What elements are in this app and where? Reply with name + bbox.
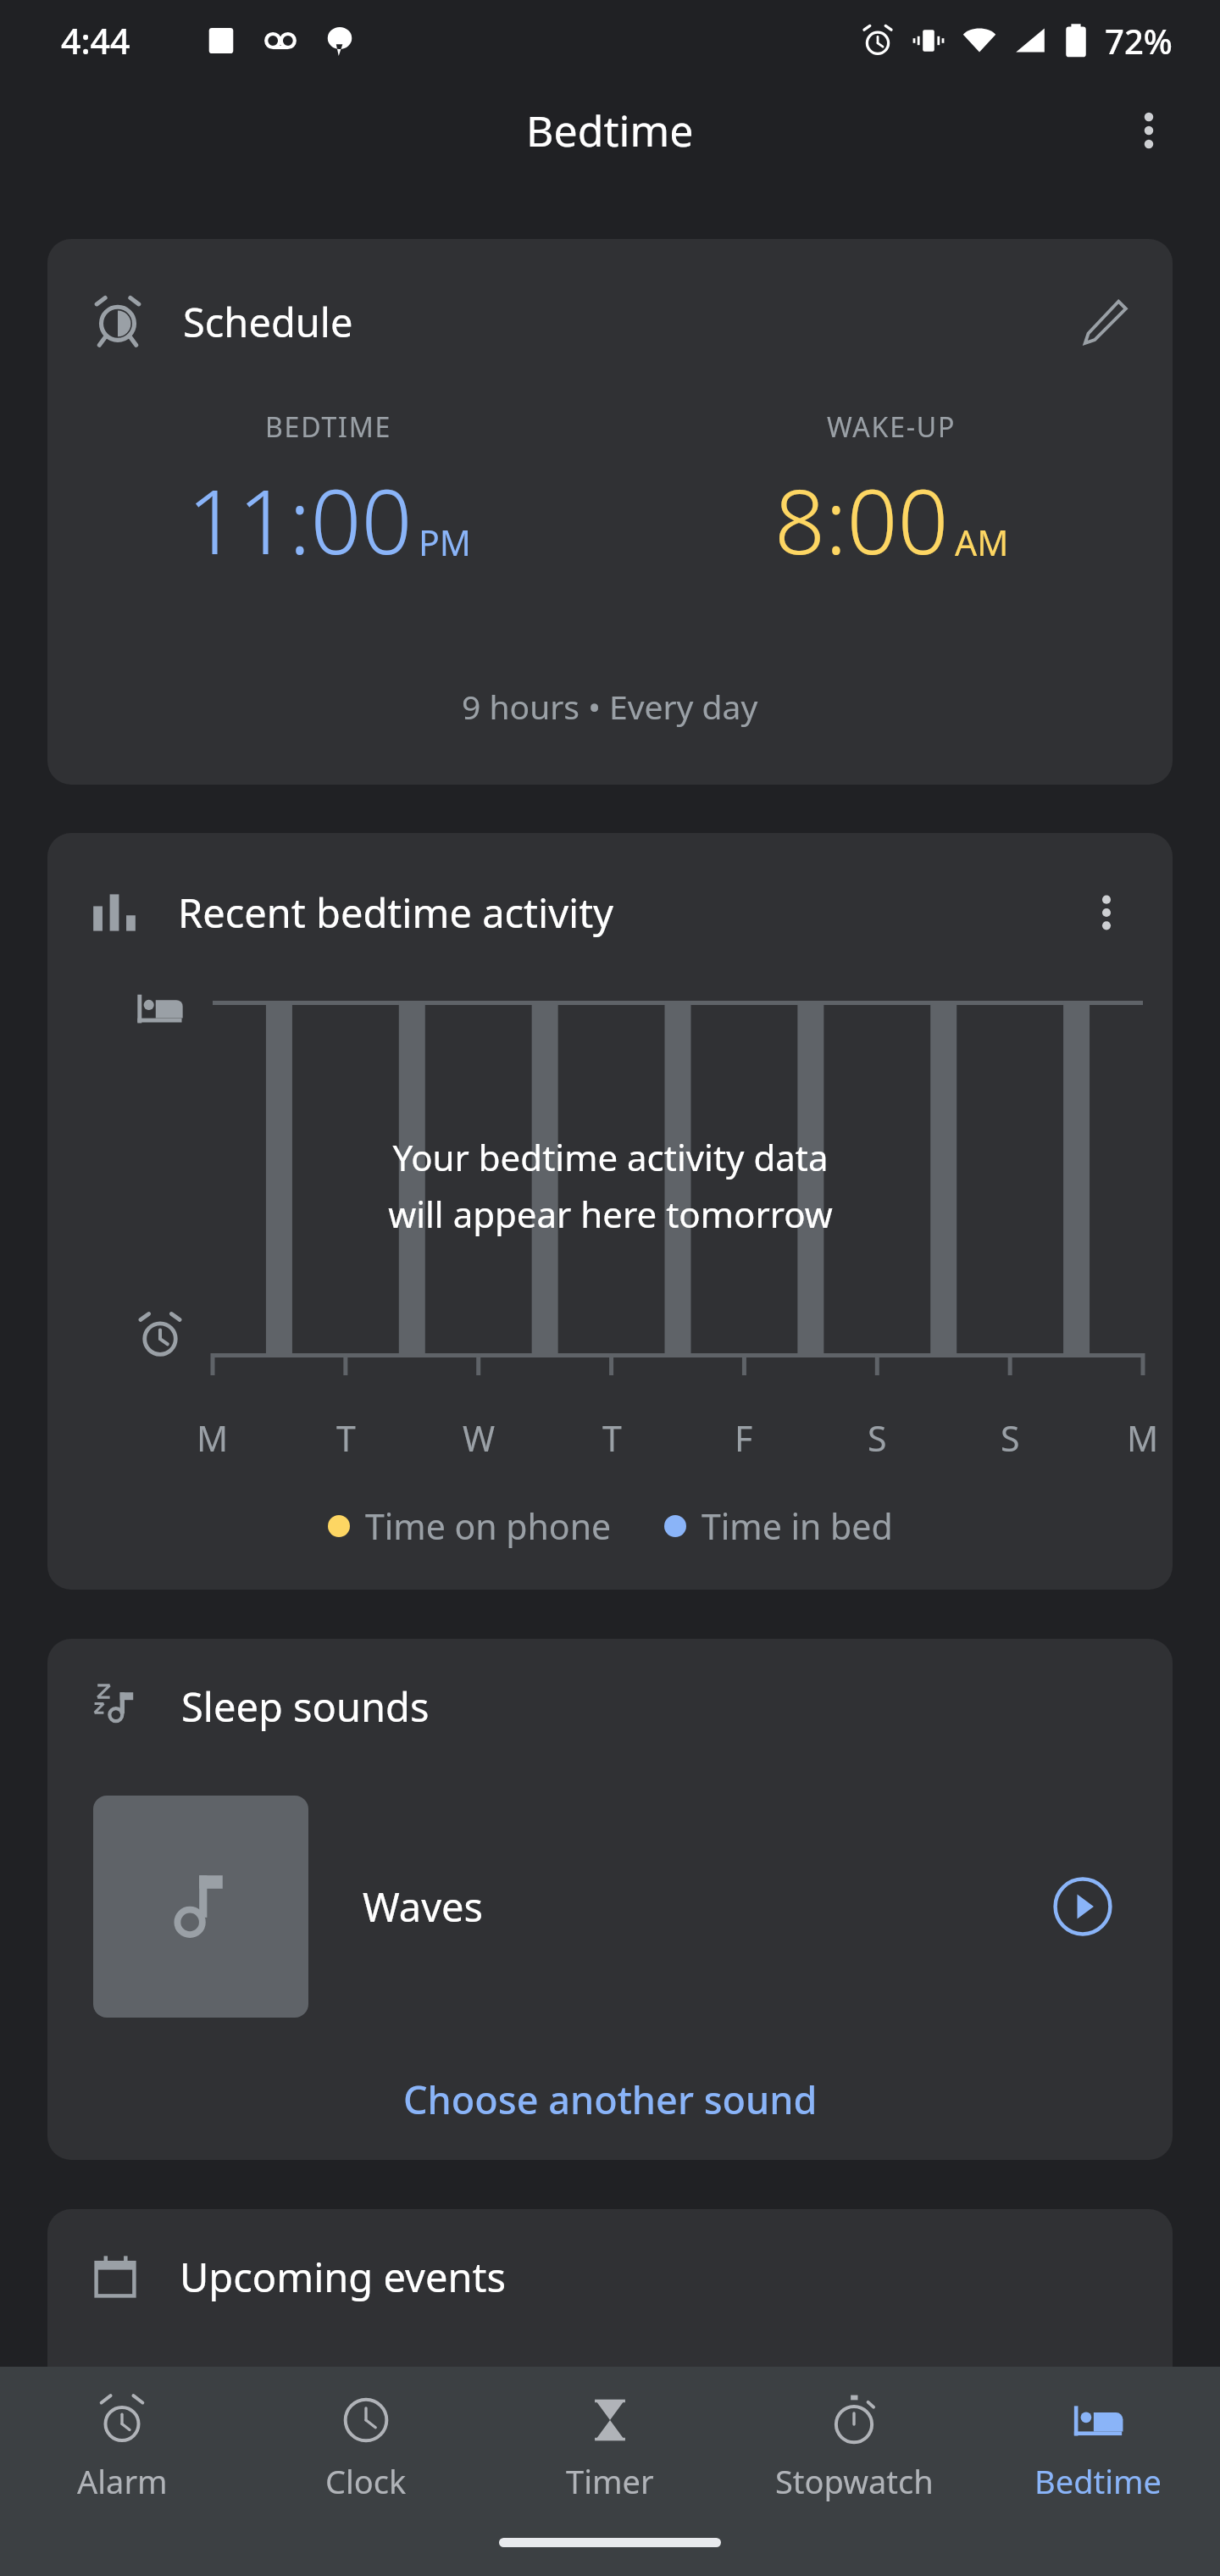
- staticText: Alarm: [77, 2459, 168, 2503]
- staticText: F: [735, 1414, 753, 1462]
- staticText: Schedule: [183, 295, 353, 349]
- staticText: M: [197, 1414, 229, 1462]
- staticText: WAKE-UP: [827, 408, 957, 446]
- staticText: Your bedtime activity data: [392, 1133, 829, 1181]
- staticText: Timer: [566, 2459, 654, 2503]
- staticText: T: [336, 1414, 356, 1462]
- staticText: T: [602, 1414, 622, 1462]
- button[interactable]: Timer: [488, 2367, 732, 2529]
- staticText: Waves: [363, 1879, 484, 1934]
- staticText: W: [463, 1414, 496, 1462]
- staticText: PM: [419, 519, 471, 566]
- staticText: Clock: [325, 2459, 407, 2503]
- staticText: 4:44: [61, 17, 130, 64]
- button[interactable]: Play Waves: [1040, 1864, 1125, 1949]
- staticText: 72%: [1105, 18, 1173, 64]
- button[interactable]: Choose another sound: [386, 2067, 835, 2132]
- button[interactable]: Alarm: [0, 2367, 244, 2529]
- button[interactable]: Activity options: [1067, 874, 1145, 952]
- staticText: BEDTIME: [265, 408, 392, 446]
- staticText: 8:00: [774, 459, 949, 580]
- button[interactable]: Clock: [244, 2367, 488, 2529]
- staticText: Sleep sounds: [181, 1679, 430, 1734]
- button[interactable]: More options: [1105, 86, 1193, 175]
- button[interactable]: Edit schedule: [1064, 281, 1145, 363]
- staticText: S: [1001, 1414, 1020, 1462]
- staticText: Time in bed: [701, 1502, 893, 1550]
- staticText: Stopwatch: [775, 2459, 934, 2503]
- staticText: M: [1127, 1414, 1159, 1462]
- staticText: Bedtime: [1034, 2459, 1162, 2503]
- staticText: 9 hours • Every day: [462, 684, 758, 729]
- staticText: Bedtime: [526, 102, 694, 159]
- button[interactable]: Upcoming events: [47, 2209, 1173, 2396]
- button[interactable]: Bedtime: [976, 2367, 1220, 2529]
- button[interactable]: Schedule: [47, 239, 1173, 785]
- button[interactable]: Waves: [93, 1793, 1125, 2020]
- staticText: S: [868, 1414, 887, 1462]
- staticText: AM: [955, 519, 1009, 566]
- staticText: 11:00: [187, 459, 413, 580]
- button[interactable]: Stopwatch: [732, 2367, 976, 2529]
- staticText: Time on phone: [365, 1502, 612, 1550]
- staticText: Recent bedtime activity: [178, 885, 614, 940]
- staticText: Upcoming events: [180, 2250, 506, 2304]
- staticText: Choose another sound: [403, 2074, 818, 2125]
- staticText: will appear here tomorrow: [388, 1190, 833, 1238]
